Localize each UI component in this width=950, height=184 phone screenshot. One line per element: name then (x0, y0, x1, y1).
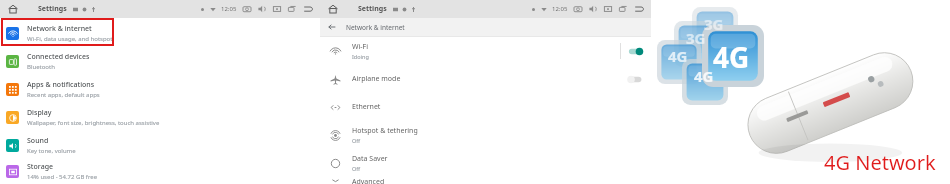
button[interactable]: Apps & notifications (0, 75, 320, 103)
staticText: Hotspot & tethering (352, 126, 418, 136)
staticText: 12:05 (221, 5, 237, 13)
staticText: Airplane mode (352, 74, 401, 84)
staticText: Network & internet (346, 23, 405, 32)
button[interactable]: Network & internet (0, 19, 320, 47)
staticText: Settings (38, 4, 67, 14)
staticText: Bluetooth (27, 63, 55, 71)
button[interactable]: Camera (573, 4, 583, 14)
button[interactable]: Wi-Fi toggle (627, 47, 643, 56)
button[interactable]: Volume (257, 4, 267, 14)
button[interactable]: Back (633, 3, 645, 15)
button[interactable]: Sound (0, 131, 320, 159)
button[interactable]: Wi-Fi (320, 37, 651, 65)
staticText: Sound (27, 136, 49, 146)
button[interactable]: Camera (242, 4, 252, 14)
staticText: Advanced (352, 177, 385, 184)
staticText: Wi-Fi, data usage, and hotspot (27, 35, 113, 43)
staticText: Storage (27, 162, 53, 172)
button[interactable]: Recents (618, 4, 628, 14)
button[interactable]: Recents (287, 4, 297, 14)
button[interactable]: Connected devices (0, 47, 320, 75)
button[interactable]: Navigate up (325, 20, 339, 34)
staticText: Wi-Fi (352, 42, 369, 52)
staticText: Ethernet (352, 102, 381, 112)
button[interactable]: Ethernet (320, 93, 651, 121)
button[interactable]: Home (326, 2, 340, 16)
button[interactable]: Airplane mode (320, 65, 651, 93)
staticText: Connected devices (27, 52, 90, 62)
staticText: Display (27, 108, 52, 118)
staticText: Wallpaper, font size, brightness, touch … (27, 119, 160, 127)
staticText: Idoing (352, 53, 369, 60)
staticText: Settings (358, 4, 387, 14)
staticText: 4G Network (824, 149, 936, 176)
staticText: Key tone, volume (27, 147, 76, 155)
button[interactable]: Airplane mode toggle (627, 75, 643, 84)
button[interactable]: Screenshot (272, 4, 282, 14)
staticText: 4G (694, 66, 714, 86)
button[interactable]: Display (0, 103, 320, 131)
staticText: Data Saver (352, 154, 388, 164)
button[interactable]: Advanced (320, 177, 651, 184)
button[interactable]: Back (302, 3, 314, 15)
button[interactable]: Hotspot & tethering (320, 121, 651, 149)
button[interactable]: Data Saver (320, 149, 651, 177)
button[interactable]: Screenshot (603, 4, 613, 14)
staticText: 4G (713, 38, 750, 76)
button[interactable]: Storage (0, 159, 320, 184)
staticText: 3G (704, 14, 724, 34)
staticText: 12:05 (552, 5, 568, 13)
button[interactable]: Home (6, 2, 20, 16)
staticText: Recent apps, default apps (27, 91, 100, 99)
staticText: Off (352, 137, 361, 144)
staticText: 14% used - 54.72 GB free (27, 173, 98, 181)
staticText: Apps & notifications (27, 80, 95, 90)
staticText: Off (352, 165, 361, 172)
staticText: 4G (668, 46, 688, 66)
button[interactable]: Volume (588, 4, 598, 14)
staticText: 3G (686, 28, 706, 48)
staticText: Network & internet (27, 24, 92, 34)
